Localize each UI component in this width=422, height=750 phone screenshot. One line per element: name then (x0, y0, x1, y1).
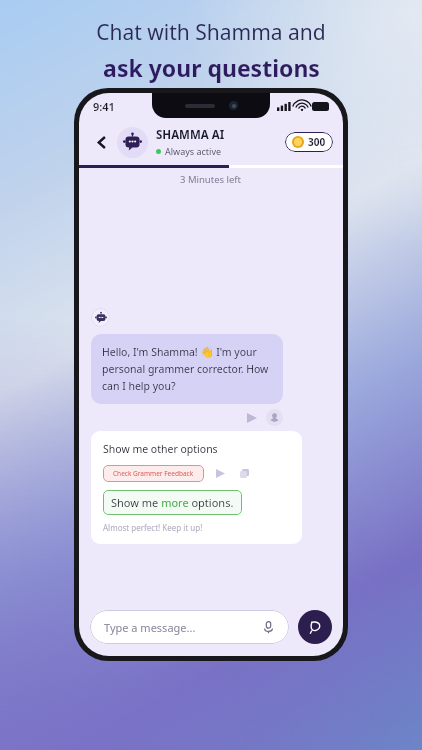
button[interactable]: Show me more options. (103, 490, 242, 515)
staticText: 300 (308, 135, 326, 149)
button[interactable]: 300 (285, 132, 333, 152)
button[interactable]: Back (89, 129, 115, 155)
staticText: Show me other options (103, 442, 218, 456)
button[interactable]: Show me other options (91, 431, 302, 544)
staticText: Type a message... (104, 620, 196, 635)
staticText: 3 Minutes left (180, 173, 242, 186)
staticText: SHAMMA AI (156, 127, 225, 143)
button[interactable]: Play audio (213, 466, 228, 481)
button[interactable]: Hello, I'm Shamma! 👋 I'm your personal g… (91, 334, 283, 404)
staticText: ask your questions (103, 52, 320, 83)
staticText: Chat with Shamma and (96, 18, 326, 47)
staticText: 9:41 (93, 99, 115, 114)
staticText: Always active (165, 145, 222, 157)
staticText: Almost perfect! Keep it up! (103, 522, 203, 533)
button[interactable]: Type a message... (90, 610, 289, 644)
button[interactable]: Send (298, 610, 332, 644)
staticText: Hello, I'm Shamma! 👋 I'm your personal g… (102, 345, 272, 393)
staticText: Show me more options. (111, 495, 234, 510)
staticText: Check Grammer Feedback (113, 469, 194, 478)
button[interactable]: Copy (237, 466, 252, 481)
button[interactable]: Check Grammer Feedback (103, 465, 204, 482)
button[interactable]: Play (244, 410, 260, 426)
